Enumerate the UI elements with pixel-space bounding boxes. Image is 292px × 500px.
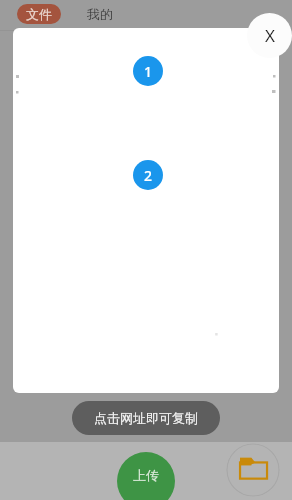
staticText: 1 xyxy=(144,62,153,81)
button[interactable]: 文件 xyxy=(17,4,61,24)
staticText: 2 xyxy=(144,166,153,185)
button[interactable]: Folder xyxy=(226,443,280,497)
button[interactable]: 2 xyxy=(133,160,163,190)
staticText: 上传 xyxy=(133,467,159,483)
staticText: X xyxy=(265,24,275,47)
staticText: 文件 xyxy=(26,6,52,22)
button[interactable]: 我的 xyxy=(83,4,117,24)
staticText: 我的 xyxy=(87,6,113,22)
button[interactable]: Close xyxy=(247,13,292,58)
staticText: 点击网址即可复制 xyxy=(94,410,198,426)
button[interactable]: 上传 xyxy=(117,452,175,500)
button[interactable]: 点击网址即可复制 xyxy=(72,401,220,435)
button[interactable]: 1 xyxy=(133,56,163,86)
